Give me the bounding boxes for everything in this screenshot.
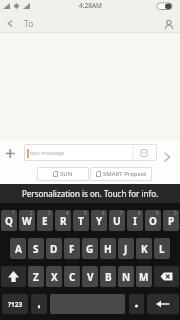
button[interactable] — [31, 294, 47, 314]
button[interactable]: A — [10, 238, 26, 259]
staticText: D — [50, 242, 58, 256]
button[interactable] — [3, 15, 18, 30]
staticText: W — [22, 214, 32, 228]
button[interactable] — [147, 294, 179, 314]
button[interactable] — [1, 266, 26, 287]
staticText: Personalization is on. Touch for info. — [22, 188, 159, 199]
button[interactable]: Q — [1, 210, 17, 231]
staticText: 2 — [30, 210, 33, 216]
staticText: U — [113, 214, 121, 228]
button[interactable]: J — [118, 238, 134, 259]
button[interactable]: C — [64, 266, 80, 287]
staticText: 1 — [12, 210, 15, 216]
staticText: N — [122, 270, 131, 284]
button[interactable]: SUN — [37, 167, 89, 181]
staticText: P — [168, 214, 175, 228]
staticText: 7 — [120, 210, 123, 216]
staticText: 3 — [48, 210, 51, 216]
staticText: 4 — [66, 210, 69, 216]
button[interactable]: M — [136, 266, 152, 287]
staticText: To — [24, 18, 34, 30]
staticText: M — [139, 270, 149, 284]
staticText: 0 — [174, 210, 177, 216]
button[interactable]: O — [145, 210, 161, 231]
button[interactable]: R — [55, 210, 71, 231]
staticText: S — [33, 242, 39, 256]
button[interactable]: X — [46, 266, 62, 287]
button[interactable]: text message — [24, 144, 157, 161]
staticText: X — [51, 270, 58, 284]
staticText: text message — [30, 149, 65, 156]
staticText: B — [105, 270, 112, 284]
button[interactable] — [160, 16, 178, 32]
button[interactable]: ?123 — [2, 294, 28, 314]
staticText: SUN — [60, 170, 73, 178]
staticText: 4:28AM — [79, 1, 102, 10]
button[interactable]: N — [118, 266, 134, 287]
staticText: F — [69, 242, 75, 256]
button[interactable]: Y — [91, 210, 107, 231]
staticText: ?123 — [8, 300, 23, 309]
staticText: R — [60, 214, 67, 228]
button[interactable]: B — [100, 266, 116, 287]
staticText: J — [124, 242, 128, 256]
button[interactable]: V — [82, 266, 98, 287]
button[interactable]: E — [37, 210, 53, 231]
staticText: G — [86, 242, 94, 256]
staticText: 9 — [156, 210, 159, 216]
button[interactable]: K — [136, 238, 152, 259]
staticText: A — [15, 242, 22, 256]
staticText: O — [149, 214, 157, 228]
button[interactable]: Z — [28, 266, 44, 287]
button[interactable]: SMART Prepaid — [90, 167, 152, 181]
staticText: E — [42, 214, 48, 228]
staticText: 5 — [84, 210, 87, 216]
staticText: C — [69, 270, 76, 284]
button[interactable]: P — [163, 210, 179, 231]
staticText: SMART Prepaid — [103, 170, 146, 178]
staticText: V — [87, 270, 94, 284]
button[interactable]: U — [109, 210, 125, 231]
button[interactable]: S — [28, 238, 44, 259]
button[interactable]: I — [127, 210, 143, 231]
button[interactable]: F — [64, 238, 80, 259]
button[interactable]: H — [100, 238, 116, 259]
staticText: T — [78, 214, 84, 228]
staticText: 6 — [102, 210, 105, 216]
staticText: K — [141, 242, 148, 256]
staticText: H — [104, 242, 112, 256]
button[interactable]: W — [19, 210, 35, 231]
button[interactable] — [129, 294, 144, 314]
button[interactable]: G — [82, 238, 98, 259]
staticText: L — [159, 242, 165, 256]
button[interactable] — [154, 266, 179, 287]
staticText: Z — [33, 270, 39, 284]
staticText: 8 — [138, 210, 141, 216]
staticText: Q — [5, 214, 13, 228]
button[interactable]: L — [154, 238, 170, 259]
staticText: I — [133, 214, 137, 228]
staticText: Y — [96, 214, 103, 228]
button[interactable]: Personalization is on. Touch for info. — [0, 184, 180, 203]
button[interactable]: D — [46, 238, 62, 259]
button[interactable]: T — [73, 210, 89, 231]
